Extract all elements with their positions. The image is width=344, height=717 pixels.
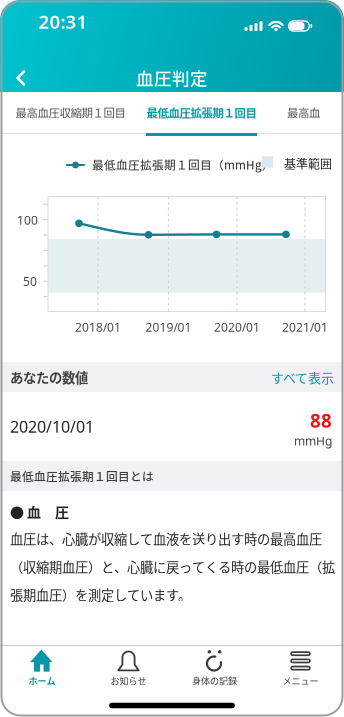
staticText: 張期血圧）を測定しています。 [10, 585, 191, 604]
button[interactable]: 最低血圧拡張期１回目 [146, 92, 256, 132]
staticText: 100 [17, 212, 38, 228]
staticText: メニュー [282, 674, 318, 687]
button[interactable]: 身体の記録 [174, 646, 254, 694]
staticText: お知らせ [110, 674, 146, 687]
staticText: 2020/01 [214, 319, 260, 335]
staticText: あなたの数値 [10, 367, 88, 387]
staticText: 50 [23, 273, 37, 289]
button[interactable]: お知らせ [88, 646, 168, 694]
staticText: 20:31 [38, 9, 87, 34]
staticText: ● 血 圧 [10, 501, 69, 522]
staticText: 基準範囲 [284, 155, 332, 172]
staticText: 最低血圧拡張期１回目とは [10, 467, 154, 484]
staticText: 88 [310, 408, 332, 433]
staticText: 最高血圧収縮期１回目 [287, 104, 344, 121]
button[interactable]: 最高血圧収縮期１回目 [15, 92, 125, 132]
staticText: 最高血圧収縮期１回目 [15, 104, 125, 121]
button[interactable]: 2020/10/01 [0, 392, 344, 461]
staticText: 血圧は、心臓が収縮して血液を送り出す時の最高血圧 [10, 529, 322, 548]
staticText: 最低血圧拡張期１回目 [146, 104, 256, 121]
staticText: 最低血圧拡張期１回目（mmHg） [92, 156, 274, 173]
staticText: 2021/01 [282, 319, 328, 335]
staticText: 血圧判定 [136, 65, 208, 90]
button[interactable]: 最高血圧収縮期１回目 [287, 92, 320, 132]
button[interactable] [6, 63, 36, 93]
staticText: （収縮期血圧）と、心臓に戻ってくる時の最低血圧（拡 [10, 557, 335, 576]
staticText: ホーム [28, 674, 55, 687]
button[interactable]: メニュー [260, 646, 340, 694]
staticText: 身体の記録 [192, 674, 237, 687]
staticText: 2020/10/01 [10, 416, 94, 437]
staticText: 2019/01 [145, 319, 191, 335]
staticText: mmHg [294, 433, 332, 449]
button[interactable]: ホーム [2, 646, 82, 694]
staticText: すべて表示 [271, 368, 334, 386]
button[interactable]: すべて表示 [271, 368, 334, 386]
staticText: 2018/01 [75, 319, 121, 335]
